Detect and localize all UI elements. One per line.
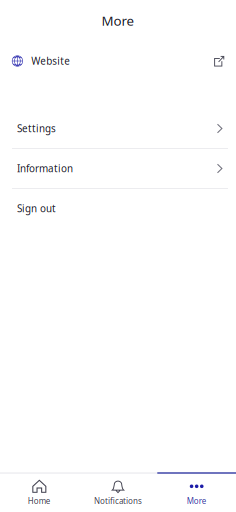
staticText: More [187, 495, 207, 506]
staticText: Sign out [17, 202, 56, 215]
button[interactable]: Information [0, 149, 236, 188]
staticText: Notifications [94, 495, 142, 506]
staticText: More [101, 11, 134, 30]
button[interactable]: Sign out [0, 189, 236, 228]
staticText: Website [31, 54, 70, 68]
button[interactable]: Settings [0, 109, 236, 148]
button[interactable]: Home [0, 473, 79, 512]
button[interactable]: Notifications [79, 473, 157, 512]
button[interactable]: More [157, 473, 236, 512]
staticText: Home [28, 495, 51, 506]
staticText: Settings [17, 122, 56, 135]
staticText: Information [17, 162, 73, 175]
button[interactable]: Website [0, 47, 236, 75]
